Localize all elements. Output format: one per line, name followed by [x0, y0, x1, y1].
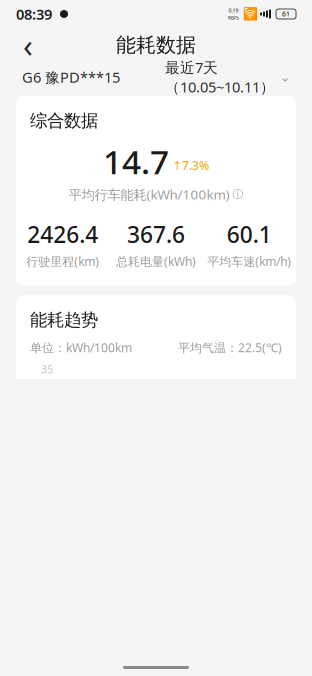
staticText: ⓘ	[232, 188, 243, 201]
staticText: 14.7	[103, 139, 169, 184]
staticText: 61	[282, 10, 290, 18]
staticText: ↑7.3%	[172, 157, 209, 173]
staticText: ‹	[23, 24, 33, 66]
staticText: 平均行车能耗(kWh/100km)	[68, 186, 229, 203]
staticText: 131.1kWh	[124, 665, 188, 676]
staticText: 平均气温：22.5(℃)	[178, 340, 282, 355]
staticText: 总耗电量(kWh)	[116, 253, 196, 269]
staticText: 🛜	[242, 7, 257, 21]
button[interactable]: 最近7天（10.05~10.11）	[165, 51, 290, 102]
staticText: 单位：kWh/100km	[30, 340, 132, 355]
staticText: 0.19	[228, 7, 238, 14]
staticText: ⌄	[279, 69, 290, 84]
staticText: 08:39	[16, 4, 52, 24]
staticText: 367.6	[127, 219, 185, 249]
staticText: 60.1	[227, 219, 272, 249]
staticText: 2426.4	[27, 219, 98, 249]
button[interactable]: G6 豫PD***15	[22, 61, 120, 93]
staticText: 行驶里程(km)	[26, 253, 99, 269]
staticText: 能耗数据	[116, 33, 196, 57]
staticText: 综合数据	[30, 110, 98, 131]
button[interactable]: Back	[8, 28, 48, 62]
staticText: 能耗趋势	[30, 309, 98, 331]
staticText: G6 豫PD***15	[22, 67, 120, 87]
staticText: 35	[41, 362, 53, 376]
staticText: KB/S	[228, 14, 239, 21]
staticText: 最近7天（10.05~10.11）	[165, 57, 275, 96]
staticText: 平均车速(km/h)	[207, 253, 291, 269]
